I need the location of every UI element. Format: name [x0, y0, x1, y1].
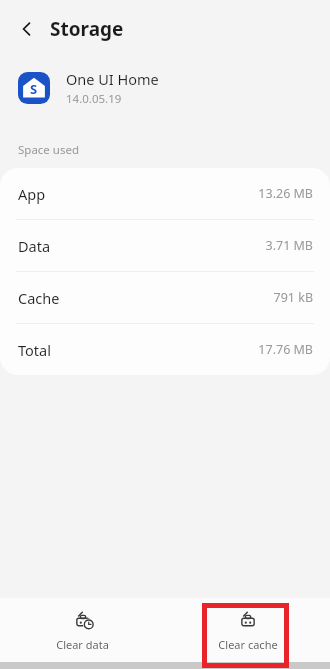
button[interactable]: Data [0, 220, 330, 271]
staticText: Data [18, 236, 51, 256]
staticText: 3.71 MB [265, 237, 313, 254]
staticText: 13.26 MB [258, 185, 313, 202]
staticText: App [18, 184, 46, 204]
staticText: Total [18, 340, 51, 360]
button[interactable]: S [0, 58, 330, 118]
staticText: Cache [18, 288, 60, 308]
staticText: Space used [18, 142, 80, 158]
button[interactable]: Back [10, 12, 44, 46]
staticText: One UI Home [66, 69, 159, 89]
staticText: Storage [50, 16, 124, 42]
staticText: 17.76 MB [258, 341, 313, 358]
button[interactable]: Clear cache [165, 598, 330, 662]
staticText: Clear data [56, 637, 109, 652]
button[interactable]: Total [0, 324, 330, 375]
staticText: S [30, 80, 38, 98]
staticText: 14.0.05.19 [66, 91, 122, 107]
staticText: 791 kB [273, 289, 313, 306]
button[interactable]: Clear data [0, 598, 165, 662]
button[interactable]: App [0, 168, 330, 219]
staticText: Clear cache [218, 637, 278, 652]
button[interactable]: Cache [0, 272, 330, 323]
